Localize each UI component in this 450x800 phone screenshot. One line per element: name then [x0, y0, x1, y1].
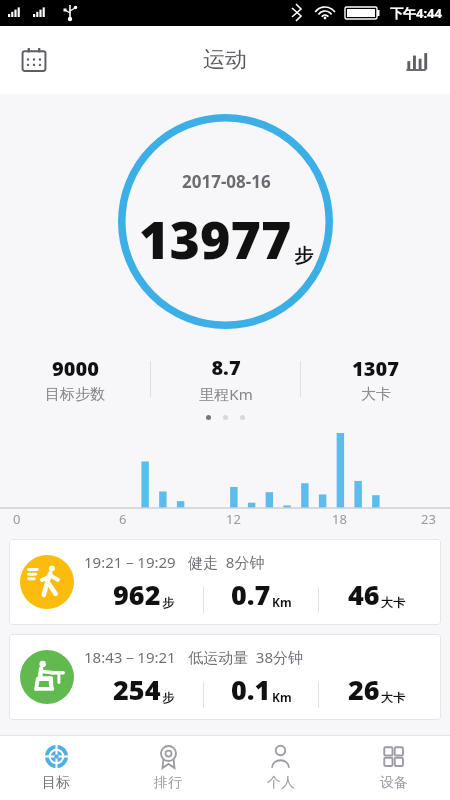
- staticText: 46: [348, 576, 380, 613]
- staticText: 13977: [139, 203, 292, 274]
- staticText: 下午4:44: [390, 4, 442, 22]
- button[interactable]: 排行: [112, 736, 224, 800]
- staticText: 运动: [203, 46, 247, 74]
- staticText: 0.1: [231, 671, 271, 708]
- button[interactable]: 19:21－19:29: [9, 539, 441, 625]
- staticText: 设备: [380, 774, 408, 792]
- button[interactable]: 18:43－19:21: [9, 634, 441, 720]
- staticText: 254: [113, 671, 161, 708]
- button[interactable]: 目标: [0, 736, 112, 800]
- staticText: 低运动量 38分钟: [188, 647, 303, 667]
- staticText: 个人: [267, 774, 295, 792]
- staticText: 健走 8分钟: [188, 552, 265, 572]
- staticText: 0: [13, 510, 21, 528]
- staticText: 9000: [52, 355, 99, 382]
- staticText: 步: [162, 690, 174, 705]
- staticText: 18: [332, 510, 347, 528]
- staticText: 8.7: [211, 354, 241, 381]
- staticText: 6: [119, 510, 127, 528]
- staticText: 23: [421, 510, 436, 528]
- staticText: 排行: [154, 774, 182, 792]
- staticText: Km: [272, 689, 292, 705]
- button[interactable]: 8.7: [151, 354, 300, 404]
- staticText: 里程Km: [199, 384, 253, 404]
- staticText: 步: [294, 244, 313, 268]
- button[interactable]: 1307: [301, 355, 450, 404]
- staticText: 2017-08-16: [182, 170, 271, 193]
- staticText: 步: [162, 595, 174, 610]
- button[interactable]: Statistics: [392, 36, 440, 84]
- staticText: 18:43－19:21: [84, 647, 176, 667]
- staticText: 目标步数: [45, 385, 105, 404]
- button[interactable]: 9000: [0, 355, 150, 404]
- staticText: 大卡: [381, 690, 405, 705]
- staticText: 目标: [42, 774, 70, 792]
- staticText: 19:21－19:29: [84, 552, 176, 572]
- button[interactable]: 个人: [224, 736, 337, 800]
- button[interactable]: Calendar: [10, 36, 58, 84]
- staticText: 962: [113, 576, 161, 613]
- staticText: 12: [226, 510, 241, 528]
- staticText: 1307: [352, 355, 399, 382]
- staticText: Km: [272, 594, 292, 610]
- staticText: 26: [348, 671, 380, 708]
- staticText: 大卡: [381, 595, 405, 610]
- staticText: 大卡: [361, 385, 391, 404]
- staticText: 0.7: [231, 576, 271, 613]
- button[interactable]: 设备: [337, 736, 450, 800]
